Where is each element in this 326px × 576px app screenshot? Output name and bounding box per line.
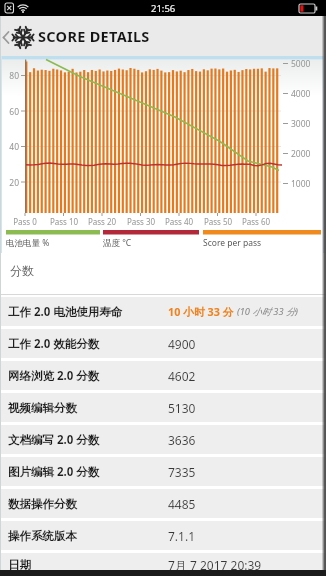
button[interactable]: 数据操作分数 [0, 489, 326, 518]
staticText: 3000 [291, 118, 311, 130]
staticText: Pass 20 [80, 216, 124, 227]
staticText: 20 [0, 177, 19, 189]
staticText: 21:56 [151, 2, 176, 15]
button[interactable]: 文档编写 2.0 分数 [0, 425, 326, 454]
button[interactable]: 视频编辑分数 [0, 393, 326, 422]
staticText: 1000 [291, 178, 311, 190]
button[interactable]: 网络浏览 2.0 分数 [0, 361, 326, 390]
staticText: 4000 [291, 88, 311, 100]
staticText: 4900 [168, 336, 196, 352]
staticText: 5130 [168, 400, 196, 416]
staticText: Score per pass [203, 237, 262, 249]
staticText: 5000 [291, 58, 311, 70]
staticText: SCORE DETAILS [38, 26, 150, 46]
staticText: Pass 50 [196, 216, 240, 227]
staticText: 网络浏览 2.0 分数 [8, 368, 100, 384]
staticText: 温度 °C [103, 237, 132, 249]
staticText: 3636 [168, 432, 196, 448]
staticText: 操作系统版本 [8, 529, 77, 543]
staticText: 电池电量 % [6, 237, 50, 249]
staticText: 80 [0, 70, 19, 82]
staticText: 7.1.1 [168, 528, 196, 544]
staticText: 数据操作分数 [8, 497, 77, 511]
button[interactable]: 工作 2.0 电池使用寿命 [0, 297, 326, 326]
staticText: Pass 30 [119, 216, 163, 227]
staticText: 60 [0, 106, 19, 118]
staticText: 40 [0, 141, 19, 153]
staticText: Pass 60 [234, 216, 278, 227]
button[interactable]: SCORE DETAILS [0, 16, 150, 56]
staticText: 图片编辑 2.0 分数 [8, 464, 100, 480]
button[interactable]: 日期 [0, 553, 326, 576]
staticText: 分数 [10, 263, 34, 278]
staticText: 4485 [168, 496, 196, 512]
staticText: 10 小时 33 分 [168, 304, 234, 319]
staticText: 工作 2.0 效能分数 [8, 336, 100, 352]
staticText: 工作 2.0 电池使用寿命 [8, 304, 123, 320]
staticText: 文档编写 2.0 分数 [8, 432, 100, 448]
button[interactable]: 图片编辑 2.0 分数 [0, 457, 326, 486]
staticText: 7335 [168, 464, 196, 480]
staticText: (10 小时 33 分) [237, 305, 299, 318]
staticText: 2000 [291, 148, 311, 160]
staticText: 7月 7 2017 20:39 [168, 557, 262, 573]
staticText: 日期 [8, 558, 31, 572]
staticText: Pass 40 [157, 216, 201, 227]
button[interactable]: 工作 2.0 效能分数 [0, 329, 326, 358]
button[interactable]: 操作系统版本 [0, 521, 326, 550]
staticText: 视频编辑分数 [8, 401, 77, 415]
staticText: Pass 10 [42, 216, 86, 227]
staticText: Pass 0 [3, 216, 47, 227]
staticText: 4602 [168, 368, 196, 384]
